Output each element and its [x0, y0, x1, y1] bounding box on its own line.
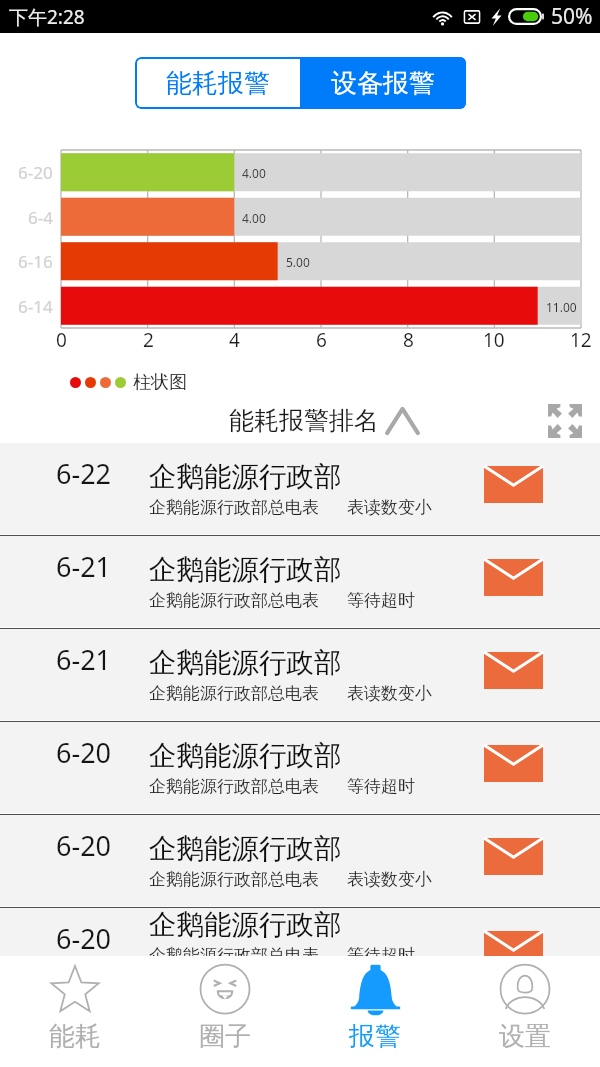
staticText: 6-14 — [18, 295, 53, 318]
staticText: 6-22 — [56, 455, 112, 492]
staticText: 0 — [56, 327, 67, 353]
staticText: 4.00 — [242, 165, 266, 181]
staticText: 11.00 — [546, 299, 577, 315]
staticText: 50% — [551, 2, 593, 31]
button[interactable]: 6-20 — [0, 722, 600, 813]
staticText: 6-20 — [56, 734, 112, 771]
staticText: 表读数变小 — [347, 683, 432, 704]
staticText: 企鹅能源行政部 — [149, 460, 342, 495]
staticText: 等待超时 — [347, 945, 415, 956]
staticText: 企鹅能源行政部 — [149, 739, 342, 774]
staticText: 企鹅能源行政部总电表 — [149, 945, 319, 956]
staticText: 2 — [143, 327, 154, 353]
staticText: 报警 — [349, 1020, 401, 1053]
staticText: 6-4 — [28, 206, 53, 229]
button[interactable]: 6-20 — [0, 815, 600, 906]
button[interactable]: 能耗报警排名 — [229, 405, 420, 436]
staticText: 表读数变小 — [347, 869, 432, 890]
staticText: 企鹅能源行政部 — [149, 908, 342, 943]
staticText: 8 — [403, 327, 414, 353]
staticText: 4 — [229, 327, 240, 353]
button[interactable]: 设置 — [450, 956, 600, 1067]
staticText: 表读数变小 — [347, 497, 432, 518]
button[interactable]: 能耗 — [0, 956, 150, 1067]
staticText: 企鹅能源行政部总电表 — [149, 776, 319, 797]
button[interactable]: 报警 — [300, 956, 450, 1067]
staticText: 能耗 — [49, 1020, 101, 1053]
staticText: 柱状图 — [133, 371, 187, 394]
staticText: 企鹅能源行政部总电表 — [149, 869, 319, 890]
staticText: 能耗报警排名 — [229, 405, 379, 436]
staticText: 企鹅能源行政部 — [149, 553, 342, 588]
staticText: 6-21 — [56, 548, 112, 585]
button[interactable]: 能耗报警 — [135, 57, 300, 109]
staticText: 企鹅能源行政部总电表 — [149, 683, 319, 704]
staticText: 6-21 — [56, 641, 112, 678]
button[interactable]: 6-21 — [0, 536, 600, 627]
staticText: 6-16 — [18, 250, 53, 273]
staticText: 等待超时 — [347, 776, 415, 797]
staticText: 10 — [483, 327, 505, 353]
staticText: 设置 — [499, 1020, 551, 1053]
button[interactable]: 6-21 — [0, 629, 600, 720]
staticText: 6-20 — [18, 161, 53, 184]
staticText: 设备报警 — [331, 67, 435, 100]
button[interactable]: 设备报警 — [300, 57, 466, 109]
staticText: 圈子 — [199, 1020, 251, 1053]
staticText: 6-20 — [56, 827, 112, 864]
staticText: 6 — [316, 327, 327, 353]
staticText: 4.00 — [242, 210, 266, 226]
button[interactable]: 圈子 — [150, 956, 300, 1067]
staticText: 企鹅能源行政部 — [149, 832, 342, 867]
staticText: 5.00 — [286, 254, 310, 270]
staticText: 下午2:28 — [9, 4, 85, 30]
staticText: 企鹅能源行政部 — [149, 646, 342, 681]
button[interactable]: 6-22 — [0, 443, 600, 534]
staticText: 等待超时 — [347, 590, 415, 611]
staticText: 12 — [570, 327, 592, 353]
button[interactable]: 6-20 — [0, 908, 600, 956]
staticText: 企鹅能源行政部总电表 — [149, 497, 319, 518]
button[interactable]: Fullscreen — [548, 404, 582, 438]
staticText: 6-20 — [56, 920, 112, 957]
staticText: 能耗报警 — [166, 67, 270, 100]
staticText: 企鹅能源行政部总电表 — [149, 590, 319, 611]
